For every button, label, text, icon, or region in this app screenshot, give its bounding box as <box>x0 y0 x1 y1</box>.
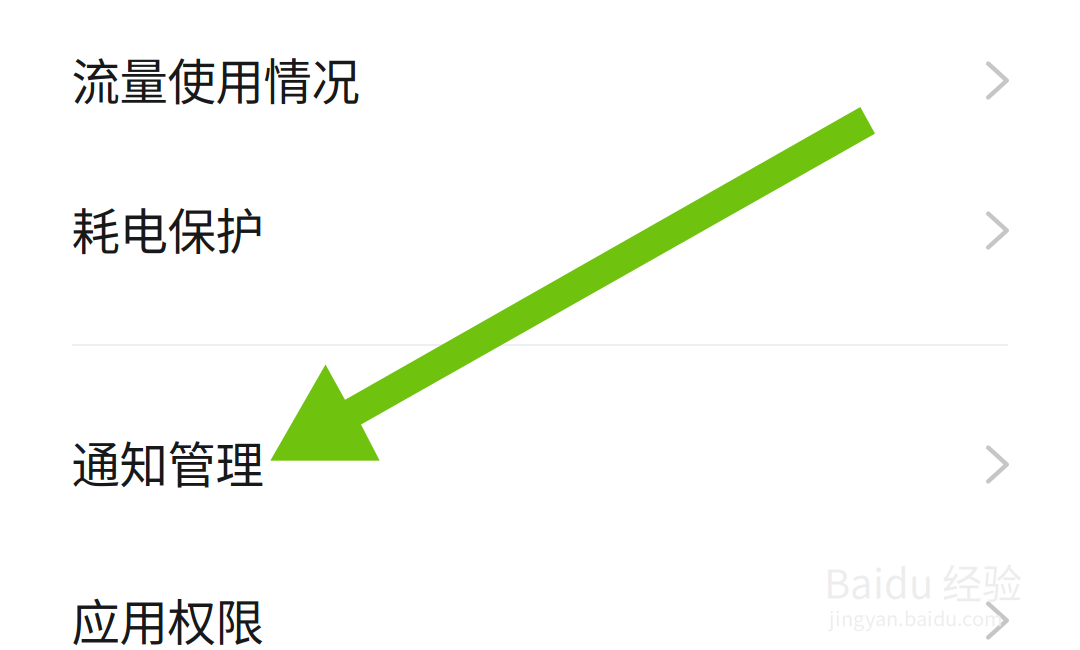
staticText: 流量使用情况 <box>71 43 359 114</box>
button[interactable]: 通知管理 <box>0 389 1080 539</box>
staticText: 应用权限 <box>71 584 263 650</box>
staticText: 耗电保护 <box>71 193 263 263</box>
button[interactable]: 流量使用情况 <box>0 6 1080 156</box>
staticText: Baidu 经验 <box>824 552 1022 610</box>
staticText: 通知管理 <box>71 427 263 497</box>
staticText: jingyan.baidu.com <box>829 603 1003 632</box>
button[interactable]: 应用权限 <box>0 546 1080 650</box>
button[interactable]: 耗电保护 <box>0 156 1080 306</box>
